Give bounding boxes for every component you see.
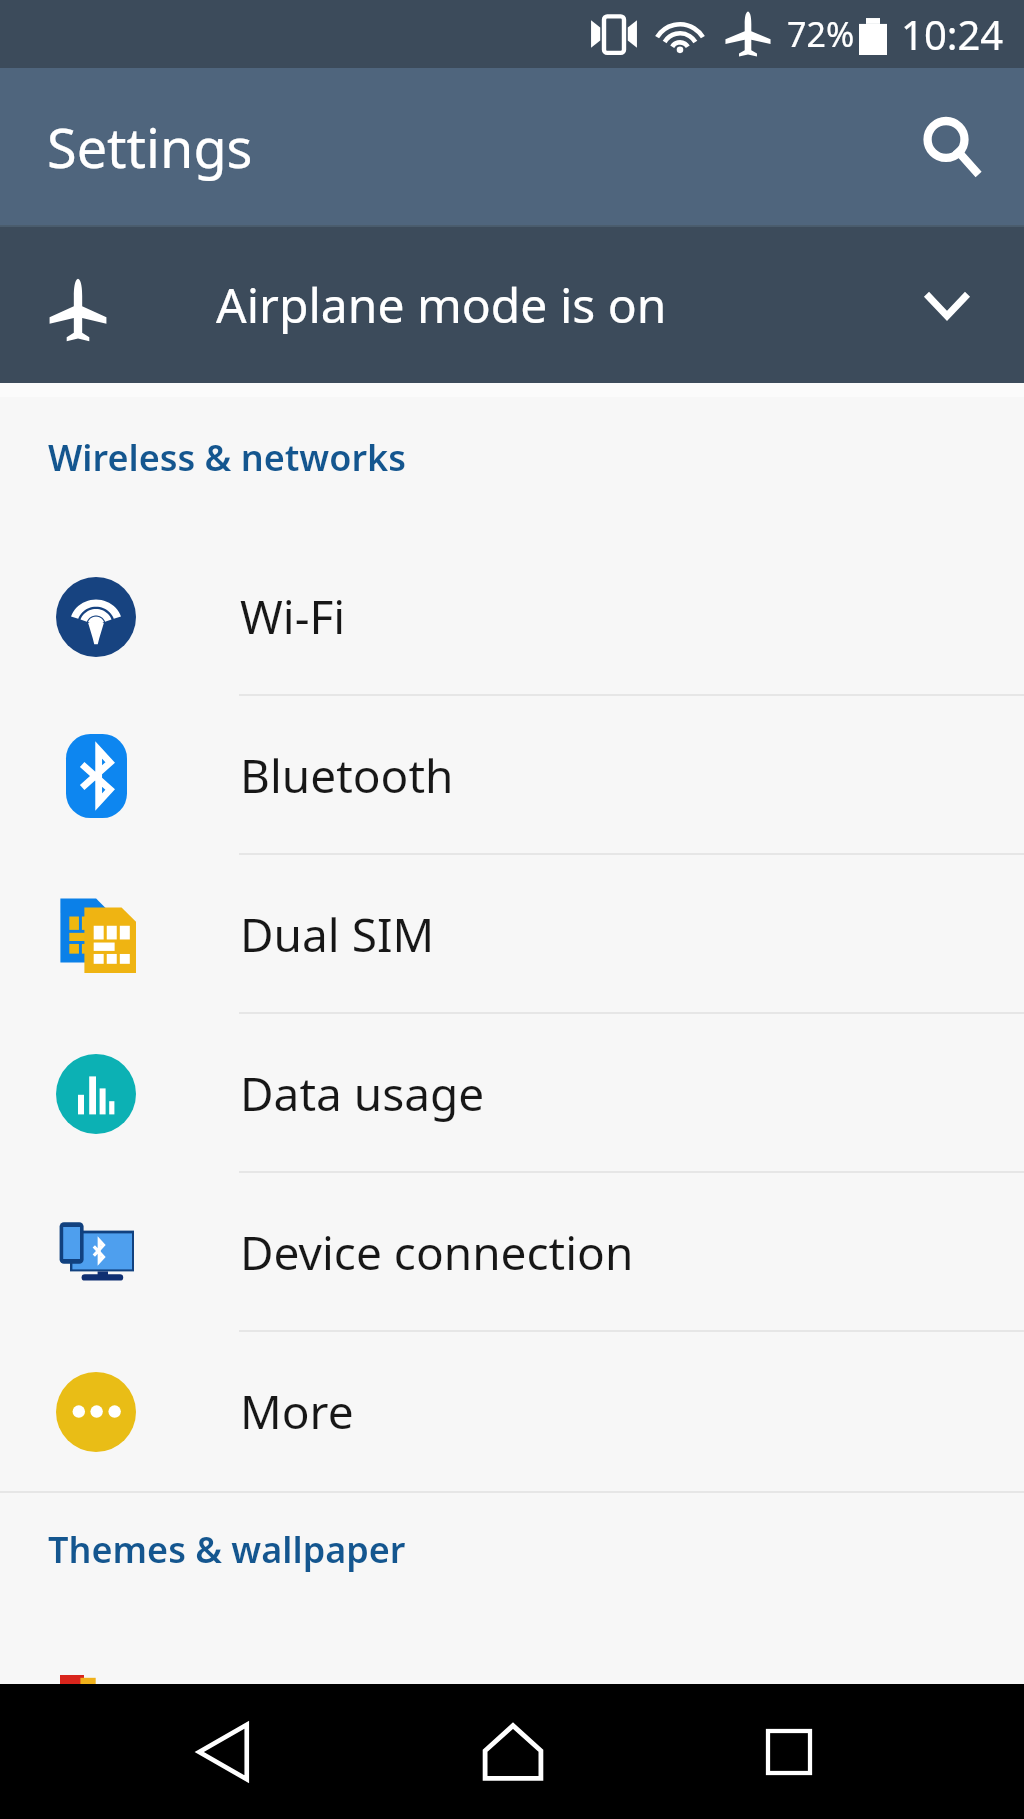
button[interactable]: Bluetooth — [0, 696, 1024, 855]
staticText: Airplane mode is on — [216, 272, 667, 337]
staticText: More — [240, 1380, 354, 1443]
staticText: Wi-Fi — [240, 585, 346, 648]
button[interactable]: Device connection — [0, 1173, 1024, 1332]
button[interactable]: Recents — [721, 1684, 856, 1819]
button[interactable]: More — [0, 1332, 1024, 1491]
staticText: Settings — [47, 110, 253, 184]
staticText: Wireless & networks — [48, 433, 406, 482]
staticText: Dual SIM — [240, 903, 435, 966]
staticText: 72% — [787, 11, 855, 57]
staticText: Data usage — [240, 1062, 485, 1125]
button[interactable]: Data usage — [0, 1014, 1024, 1173]
button[interactable]: Home — [445, 1684, 580, 1819]
button[interactable] — [0, 1633, 1024, 1684]
button[interactable]: Search — [898, 93, 1006, 201]
staticText: Device connection — [240, 1221, 634, 1284]
button[interactable]: Back — [155, 1684, 290, 1819]
button[interactable]: Airplane mode is on — [0, 225, 1024, 383]
staticText: 10:24 — [901, 7, 1004, 61]
staticText: Themes & wallpaper — [48, 1525, 406, 1574]
button[interactable]: Dual SIM — [0, 855, 1024, 1014]
staticText: Bluetooth — [240, 744, 454, 807]
button[interactable]: Wi-Fi — [0, 537, 1024, 696]
